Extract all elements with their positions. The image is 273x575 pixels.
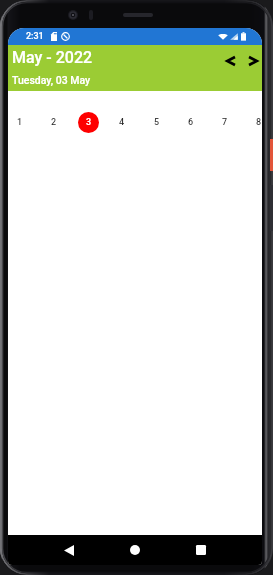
staticText: May - 2022 bbox=[12, 48, 93, 67]
staticText: 2:31 bbox=[26, 31, 44, 42]
button[interactable]: Previous month bbox=[219, 49, 243, 73]
button[interactable]: Next month bbox=[241, 49, 262, 73]
staticText: 4 bbox=[119, 117, 125, 128]
button[interactable]: 3 bbox=[71, 105, 105, 139]
staticText: 1 bbox=[17, 117, 23, 128]
button[interactable]: 2 bbox=[37, 105, 71, 139]
button[interactable]: 5 bbox=[140, 105, 174, 139]
staticText: Tuesday, 03 May bbox=[12, 74, 91, 86]
button[interactable]: Recent apps bbox=[187, 536, 215, 564]
button[interactable]: Home bbox=[121, 536, 149, 564]
staticText: 8 bbox=[256, 117, 262, 128]
button[interactable]: 6 bbox=[174, 105, 208, 139]
staticText: 3 bbox=[86, 117, 92, 128]
button[interactable]: Back bbox=[55, 536, 83, 564]
staticText: 2 bbox=[51, 117, 57, 128]
button[interactable]: 1 bbox=[8, 105, 37, 139]
button[interactable]: 7 bbox=[208, 105, 242, 139]
staticText: 7 bbox=[222, 117, 228, 128]
button[interactable]: 4 bbox=[105, 105, 139, 139]
button[interactable]: 8 bbox=[242, 105, 262, 139]
staticText: 6 bbox=[188, 117, 194, 128]
staticText: 5 bbox=[154, 117, 160, 128]
